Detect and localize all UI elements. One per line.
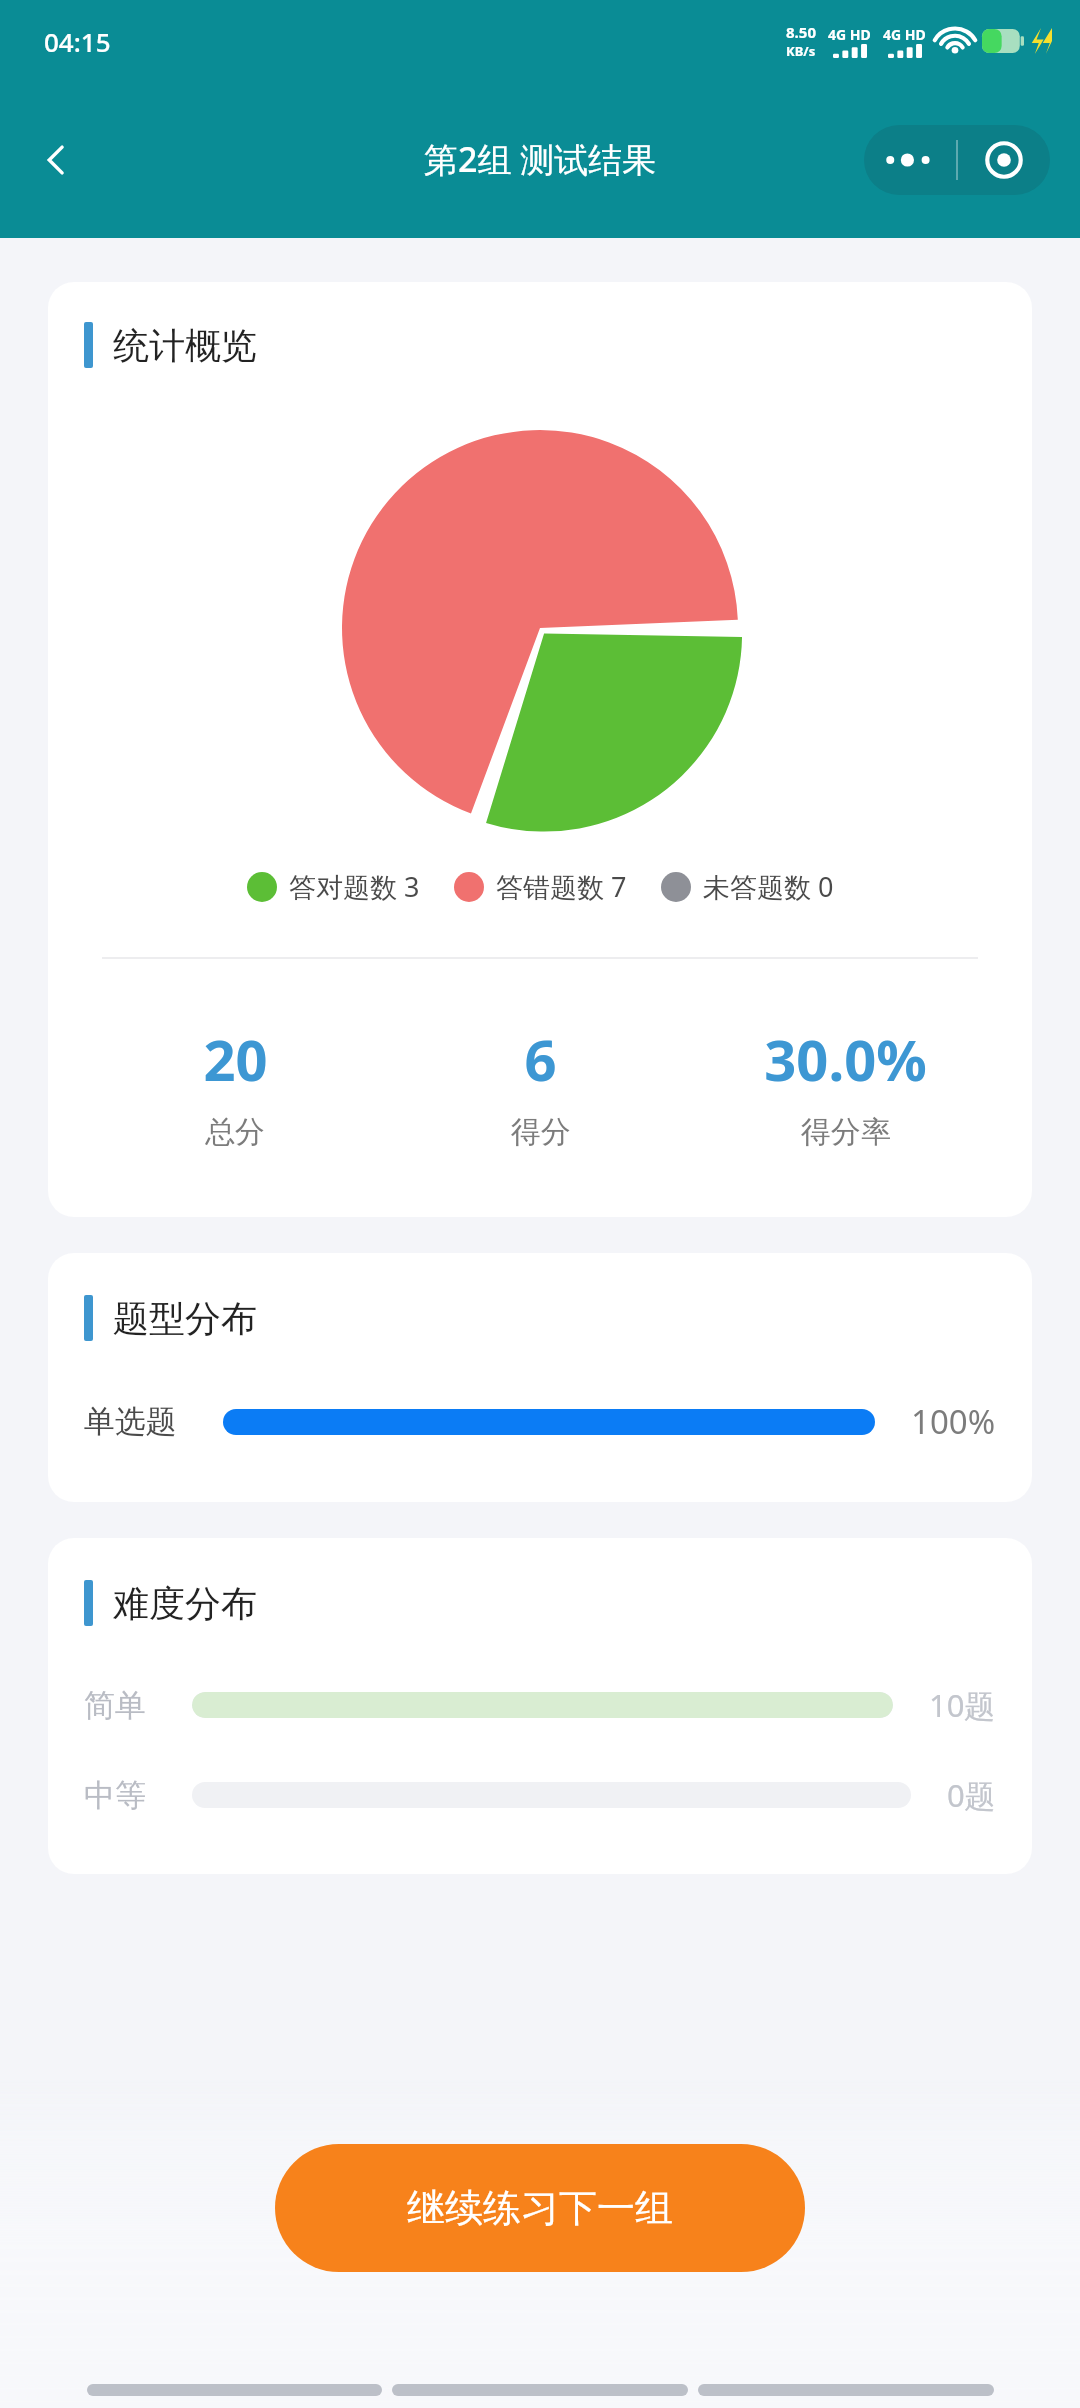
staticText: 统计概览	[113, 323, 257, 368]
staticText: 简单	[84, 1686, 146, 1725]
staticText: 得分率	[801, 1113, 891, 1151]
staticText: 总分	[205, 1113, 265, 1151]
button[interactable]: 继续练习下一组	[275, 2144, 805, 2272]
staticText: 04:15	[44, 24, 111, 59]
staticText: 得分	[511, 1113, 571, 1151]
staticText: 8.50	[786, 22, 816, 42]
staticText: 题型分布	[113, 1296, 257, 1341]
staticText: 中等	[84, 1776, 146, 1815]
staticText: 4G HD	[883, 25, 926, 44]
staticText: 继续练习下一组	[407, 2184, 673, 2232]
staticText: 30.0%	[764, 1021, 927, 1097]
staticText: 10题	[929, 1684, 996, 1726]
staticText: 答错题数 7	[496, 868, 627, 905]
staticText: 100%	[911, 1399, 996, 1444]
button[interactable]: Back	[18, 122, 94, 198]
staticText: 答对题数 3	[289, 868, 420, 905]
staticText: 未答题数 0	[703, 868, 834, 905]
staticText: KB/s	[786, 42, 816, 60]
staticText: 第2组 测试结果	[424, 136, 657, 182]
staticText: 0题	[947, 1774, 996, 1816]
staticText: 难度分布	[113, 1581, 257, 1626]
button[interactable]: Menu	[864, 125, 1050, 195]
staticText: 单选题	[84, 1402, 177, 1441]
staticText: 20	[203, 1021, 268, 1097]
staticText: 4G HD	[828, 25, 871, 44]
staticText: 6	[524, 1021, 557, 1097]
